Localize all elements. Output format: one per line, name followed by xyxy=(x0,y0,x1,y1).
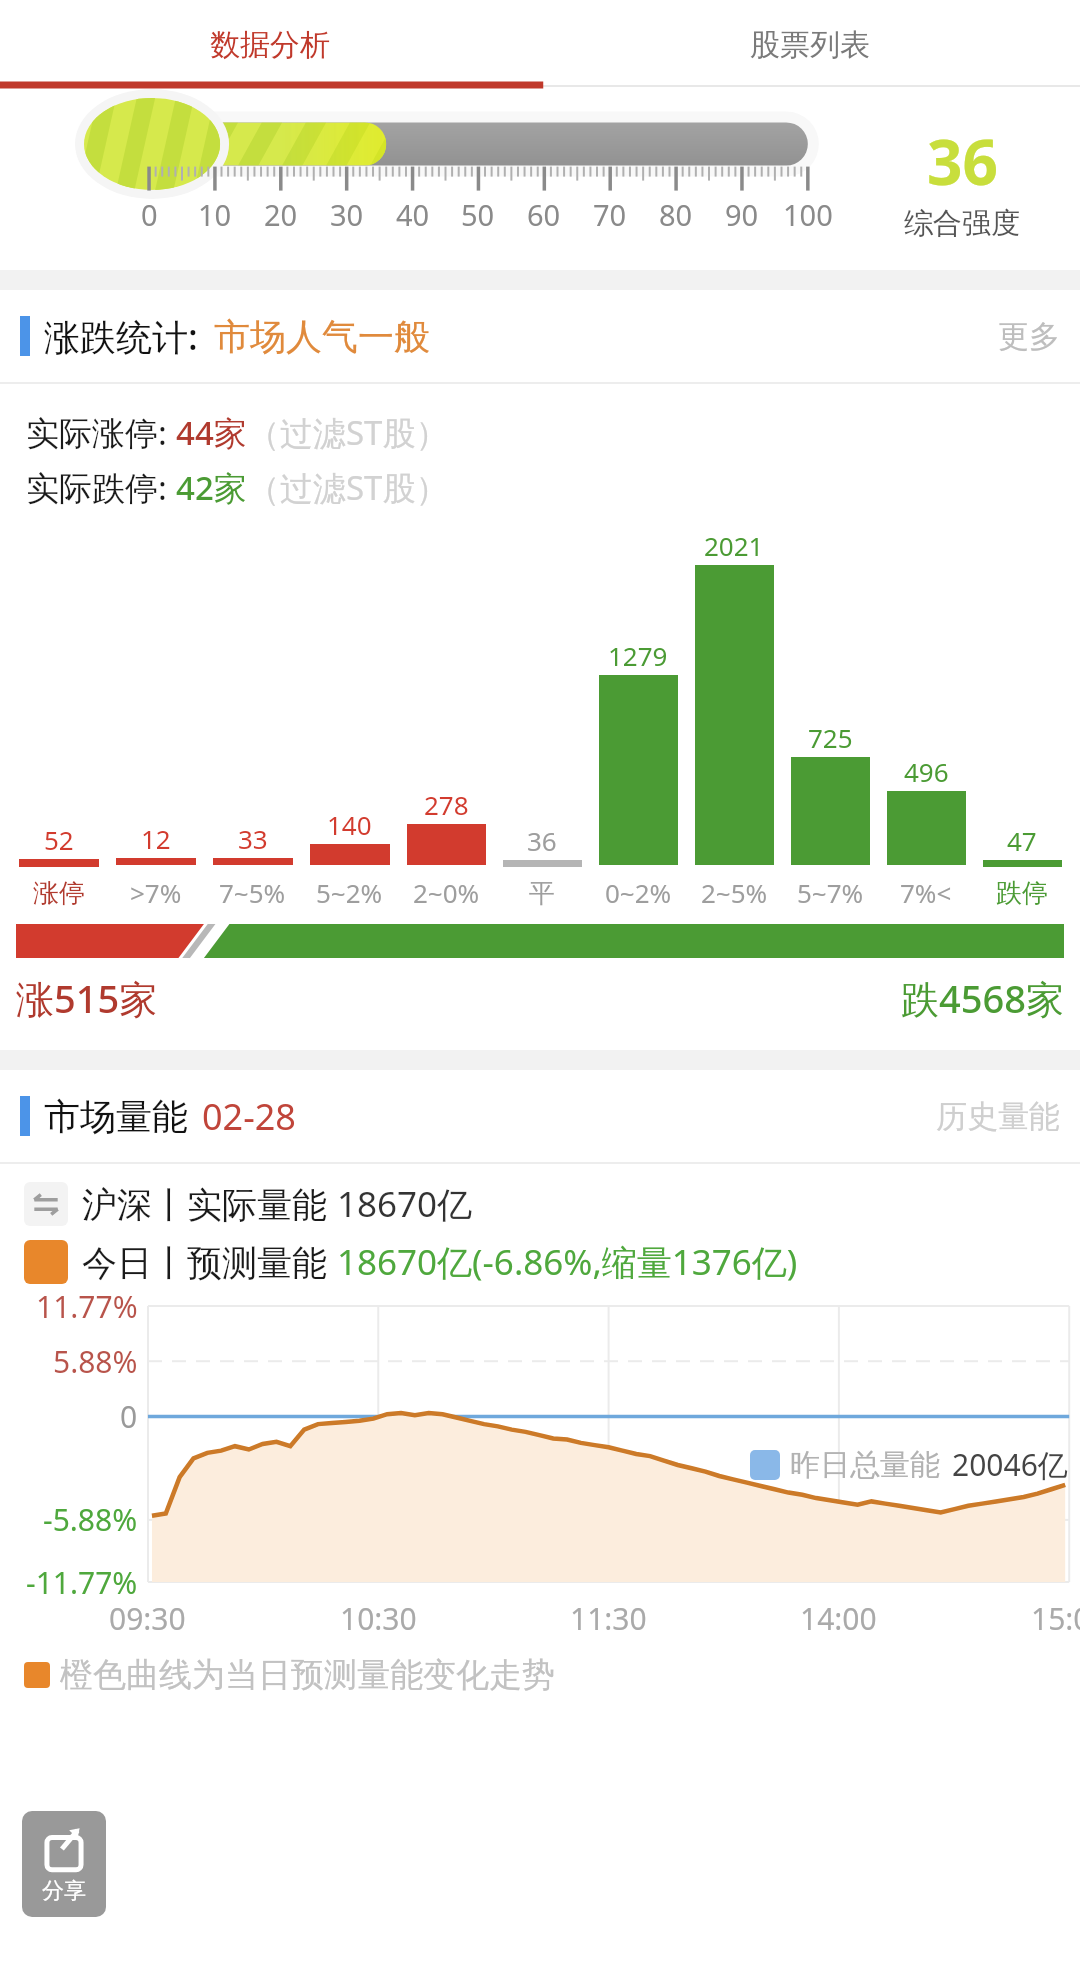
staticText: 今日丨预测量能 xyxy=(82,1238,337,1286)
staticText: 0 xyxy=(141,195,158,234)
staticText: 涨515家 xyxy=(16,972,158,1024)
staticText: 11.77% xyxy=(36,1286,138,1327)
button[interactable]: 12 xyxy=(107,821,204,910)
button[interactable]: 47 xyxy=(974,823,1070,910)
staticText: 496 xyxy=(904,754,949,789)
staticText: （过滤ST股） xyxy=(247,410,449,455)
staticText: -11.77% xyxy=(26,1562,138,1603)
staticText: 278 xyxy=(424,787,469,822)
staticText: 90 xyxy=(725,195,759,234)
staticText: 36 xyxy=(927,119,998,203)
staticText: 60 xyxy=(527,195,561,234)
button[interactable]: 今日丨预测量能 xyxy=(24,1238,798,1286)
staticText: 更多 xyxy=(998,317,1060,356)
staticText: 5.88% xyxy=(53,1341,138,1382)
staticText: 市场量能 xyxy=(44,1094,188,1139)
staticText: 42家 xyxy=(176,465,247,510)
button[interactable]: 股票列表 xyxy=(540,0,1080,90)
staticText: 实际涨停: xyxy=(26,410,176,455)
staticText: 15:00 xyxy=(1031,1598,1080,1639)
button[interactable]: 市场量能 xyxy=(0,1070,1080,1162)
staticText: 2~0% xyxy=(413,875,480,910)
button[interactable]: 496 xyxy=(878,754,974,910)
staticText: 50 xyxy=(461,195,495,234)
staticText: 10:30 xyxy=(340,1598,417,1639)
staticText: 1279 xyxy=(608,638,668,673)
staticText: 0~2% xyxy=(605,875,672,910)
button[interactable]: 140 xyxy=(301,807,398,910)
button[interactable]: 2021 xyxy=(686,528,782,910)
staticText: 7%< xyxy=(900,875,952,910)
staticText: 09:30 xyxy=(109,1598,186,1639)
staticText: 2021 xyxy=(704,528,764,563)
other: 切换指数 xyxy=(24,1182,68,1226)
staticText: 30 xyxy=(330,195,364,234)
staticText: 02-28 xyxy=(202,1092,296,1141)
staticText: 47 xyxy=(1007,823,1037,858)
button[interactable]: 数据分析 xyxy=(0,0,540,90)
staticText: 20 xyxy=(264,195,298,234)
staticText: 140 xyxy=(327,807,372,842)
staticText: 综合强度 xyxy=(904,205,1020,242)
staticText: 涨跌统计: xyxy=(44,312,198,361)
staticText: 7~5% xyxy=(219,875,286,910)
button[interactable]: 725 xyxy=(782,720,878,910)
button[interactable]: 278 xyxy=(398,787,494,910)
staticText: 10 xyxy=(198,195,232,234)
staticText: 40 xyxy=(396,195,430,234)
staticText: 36 xyxy=(527,823,557,858)
staticText: 12 xyxy=(141,821,171,856)
staticText: 33 xyxy=(238,821,268,856)
staticText: 18670亿(-6.86%,缩量1376亿) xyxy=(337,1238,798,1286)
staticText: 52 xyxy=(44,822,74,857)
staticText: 数据分析 xyxy=(210,26,330,64)
staticText: 历史量能 xyxy=(936,1097,1060,1136)
staticText: >7% xyxy=(130,875,182,910)
staticText: 0 xyxy=(120,1396,138,1437)
staticText: 实际跌停: xyxy=(26,465,176,510)
staticText: 沪深丨实际量能 xyxy=(82,1180,337,1228)
staticText: 18670亿 xyxy=(337,1180,473,1228)
staticText: 跌停 xyxy=(996,877,1048,910)
staticText: 昨日总量能 xyxy=(790,1446,940,1484)
staticText: 100 xyxy=(783,195,833,234)
staticText: 跌4568家 xyxy=(901,972,1064,1024)
staticText: 2~5% xyxy=(701,875,768,910)
staticText: 股票列表 xyxy=(750,26,870,64)
staticText: 14:00 xyxy=(800,1598,877,1639)
staticText: 44家 xyxy=(176,410,247,455)
staticText: 市场人气一般 xyxy=(214,314,430,359)
staticText: （过滤ST股） xyxy=(247,465,449,510)
staticText: 80 xyxy=(659,195,693,234)
button[interactable]: 分享 xyxy=(22,1811,106,1917)
staticText: 725 xyxy=(808,720,853,755)
button[interactable]: 切换指数 xyxy=(24,1180,473,1228)
staticText: 橙色曲线为当日预测量能变化走势 xyxy=(60,1654,555,1696)
staticText: -5.88% xyxy=(43,1499,138,1540)
staticText: 70 xyxy=(593,195,627,234)
staticText: 5~2% xyxy=(316,875,383,910)
staticText: 5~7% xyxy=(797,875,864,910)
button[interactable]: 涨跌统计: xyxy=(0,290,1080,382)
staticText: 20046亿 xyxy=(952,1444,1068,1485)
staticText: 分享 xyxy=(42,1877,86,1905)
staticText: 平 xyxy=(529,877,555,910)
button[interactable]: 1279 xyxy=(590,638,686,910)
staticText: 11:30 xyxy=(570,1598,647,1639)
button[interactable]: 33 xyxy=(204,821,301,910)
button[interactable]: 52 xyxy=(10,822,107,910)
staticText: 涨停 xyxy=(33,877,85,910)
button[interactable]: 36 xyxy=(494,823,590,910)
